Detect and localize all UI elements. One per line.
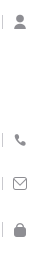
- button[interactable]: Privacy: [0, 209, 40, 253]
- button[interactable]: Phone: [0, 123, 40, 162]
- button[interactable]: Mail: [0, 167, 40, 204]
- button[interactable]: Profile: [0, 0, 40, 42]
